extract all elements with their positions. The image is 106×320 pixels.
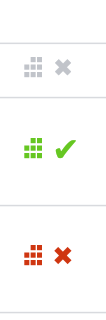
button[interactable]: Failed	[0, 205, 106, 312]
staticText: ✖	[52, 241, 74, 271]
staticText: ✔	[52, 130, 80, 168]
button[interactable]: Pending	[0, 43, 106, 97]
button[interactable]: Success	[0, 97, 106, 205]
staticText: ✖	[53, 54, 74, 82]
